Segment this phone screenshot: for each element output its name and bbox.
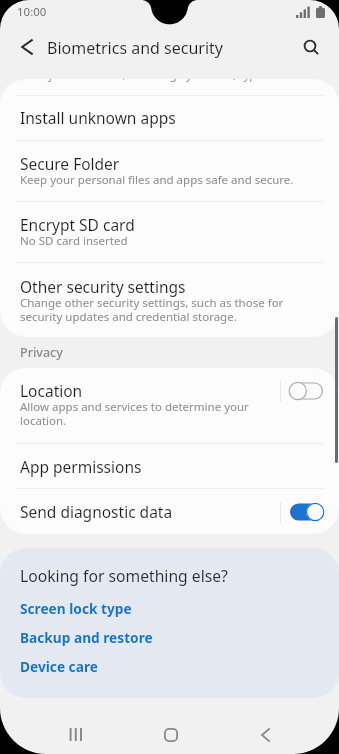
staticText: No SD card inserted [20,233,128,249]
button[interactable]: Back [243,712,288,754]
staticText: 10:00 [17,4,47,20]
staticText: Location [20,380,83,401]
button[interactable]: Off [290,381,323,401]
staticText: Backup and restore [20,628,153,647]
staticText: Screen lock type [20,599,132,618]
staticText: Allow apps and services to determine you… [20,399,249,429]
staticText: Secure Folder [20,153,120,174]
button[interactable]: Install unknown apps [0,96,339,140]
staticText: Lock your SIM card, or change your PIN, … [20,79,266,83]
staticText: Other security settings [20,276,186,297]
staticText: Change other security settings, such as … [20,295,284,325]
staticText: App permissions [20,456,142,477]
staticText: Keep your personal files and apps safe a… [20,172,294,188]
staticText: Privacy [20,344,63,361]
button[interactable]: Search [289,26,333,70]
button[interactable]: Screen lock type [0,594,339,623]
button[interactable]: Home [148,712,193,754]
button[interactable]: Secure Folder [0,141,339,201]
button[interactable]: On [290,502,323,522]
button[interactable]: Recent apps [53,712,98,754]
staticText: Send diagnostic data [20,501,173,522]
staticText: Looking for something else? [20,565,228,586]
button[interactable]: Other security settings [0,263,339,337]
button[interactable]: App permissions [0,444,339,488]
staticText: Install unknown apps [20,107,176,128]
button[interactable]: Encrypt SD card [0,202,339,262]
button[interactable]: Set up SIM card lock [0,79,339,95]
button[interactable]: Send diagnostic data [0,489,339,534]
button[interactable]: Device care [0,652,339,681]
staticText: Biometrics and security [47,37,224,59]
button[interactable]: Navigate up [6,26,48,68]
button[interactable]: Backup and restore [0,623,339,652]
staticText: Encrypt SD card [20,214,135,235]
button[interactable]: Location [0,368,339,443]
staticText: Device care [20,657,98,676]
